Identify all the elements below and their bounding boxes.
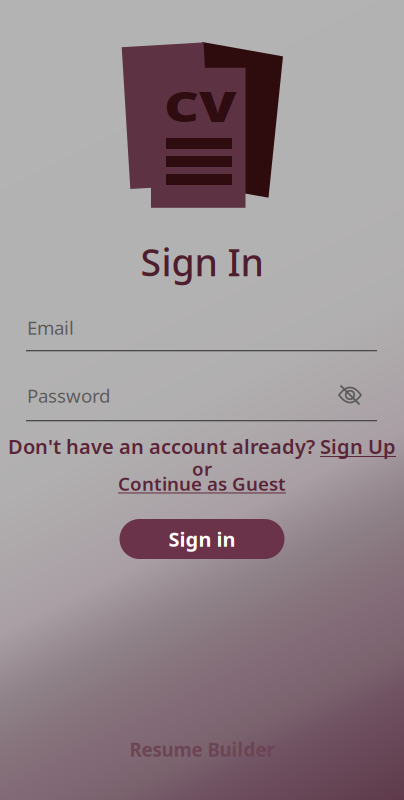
staticText: CV xyxy=(164,76,218,130)
staticText: Continue as Guest xyxy=(118,471,286,496)
staticText: Sign In xyxy=(140,237,263,287)
button[interactable]: Show password xyxy=(332,378,368,412)
button[interactable]: Continue as Guest xyxy=(0,471,404,496)
staticText: Sign in xyxy=(168,526,235,552)
button[interactable]: Sign Up xyxy=(320,433,396,460)
staticText: or xyxy=(192,456,212,481)
staticText: Password xyxy=(27,383,110,408)
staticText: Don't have an account already? xyxy=(8,433,320,460)
staticText: Resume Builder xyxy=(129,737,274,762)
button[interactable]: Sign in xyxy=(119,519,284,559)
staticText: Sign Up xyxy=(320,433,396,460)
staticText: Email xyxy=(27,315,74,340)
